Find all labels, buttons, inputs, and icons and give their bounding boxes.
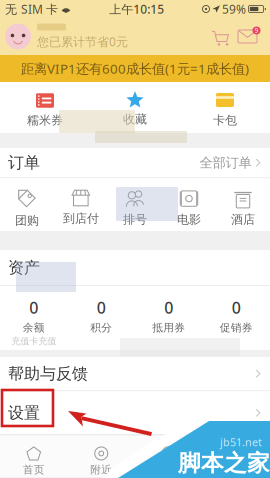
staticText: 团购	[15, 213, 39, 228]
button[interactable]: 糯米券	[0, 82, 90, 133]
staticText: 上午10:15	[109, 1, 164, 17]
button[interactable]: 0	[0, 286, 67, 350]
button[interactable]: 0	[202, 286, 270, 350]
button[interactable]: 收藏	[90, 82, 180, 133]
button[interactable]: 0	[67, 286, 135, 350]
button[interactable]: 购物车	[205, 28, 236, 44]
button[interactable]: 0	[135, 286, 202, 350]
button[interactable]: 电影	[162, 178, 216, 231]
staticText: 充值卡充值	[11, 335, 56, 347]
staticText: 首页	[23, 463, 45, 476]
staticText: 排号	[123, 212, 147, 227]
button[interactable]: 订单	[0, 148, 270, 177]
staticText: 促销券	[220, 321, 253, 334]
button[interactable]: 卡包	[180, 82, 270, 133]
staticText: 0	[97, 297, 106, 318]
staticText: 0	[29, 297, 38, 318]
button[interactable]: 首页	[0, 435, 67, 477]
staticText: 附近	[90, 463, 112, 476]
button[interactable]: 帮助与反馈	[0, 357, 270, 390]
staticText: 到店付	[63, 211, 99, 226]
staticText: 0	[164, 297, 173, 318]
button[interactable]: 发现	[135, 435, 202, 477]
staticText: 资产	[8, 258, 40, 277]
button[interactable]: 设置	[0, 391, 270, 434]
button[interactable]: 我的	[202, 435, 270, 477]
staticText: 全部订单	[199, 154, 251, 171]
button[interactable]: 酒店	[216, 178, 270, 231]
staticText: 发现	[158, 463, 180, 476]
staticText: 脚本之家	[178, 449, 270, 477]
button[interactable]: 排号	[108, 178, 162, 231]
staticText: 设置	[8, 403, 40, 423]
staticText: 收藏	[123, 112, 147, 127]
staticText: 59%	[222, 1, 246, 17]
staticText: 我的	[225, 463, 247, 476]
staticText: 糯米券	[27, 113, 63, 128]
staticText: 距离VIP1还有600成长值(1元=1成长值)	[21, 60, 249, 77]
button[interactable]: 消息	[236, 28, 270, 44]
staticText: 卡包	[213, 113, 237, 128]
staticText: 电影	[177, 212, 201, 227]
staticText: 抵用券	[152, 321, 185, 334]
staticText: 订单	[8, 153, 40, 173]
staticText: 无 SIM 卡	[5, 1, 58, 17]
staticText: 您已累计节省0元	[37, 33, 128, 49]
button[interactable]: 团购	[0, 178, 54, 231]
button[interactable]: 您已累计节省0元	[0, 23, 128, 49]
staticText: 余额	[23, 321, 45, 334]
staticText: 帮助与反馈	[8, 364, 88, 384]
staticText: 积分	[90, 321, 112, 334]
staticText: 9	[254, 26, 258, 35]
staticText: 酒店	[231, 212, 255, 227]
staticText: 0	[232, 297, 241, 318]
staticText: jb51.net	[220, 435, 262, 449]
button[interactable]: 附近	[67, 435, 135, 477]
button[interactable]: 到店付	[54, 178, 108, 231]
